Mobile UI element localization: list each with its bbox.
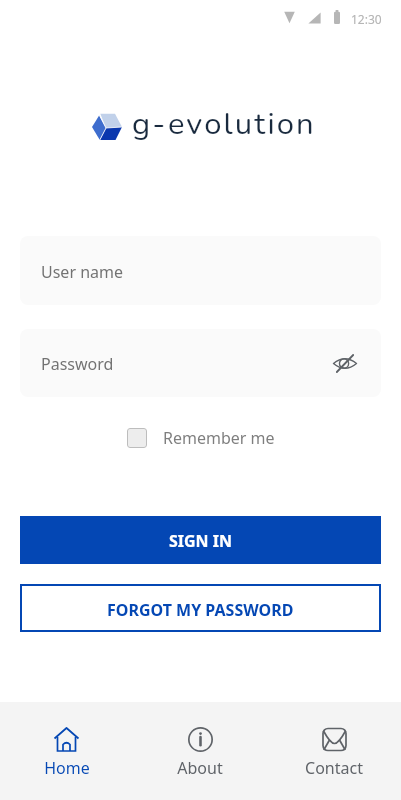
staticText: Remember me bbox=[163, 427, 275, 449]
staticText: About bbox=[177, 757, 223, 779]
button[interactable]: User name bbox=[20, 236, 381, 305]
button[interactable]: Home bbox=[0, 702, 133, 800]
button[interactable]: SIGN IN bbox=[20, 516, 381, 564]
button[interactable]: Remember me bbox=[127, 423, 275, 453]
staticText: SIGN IN bbox=[169, 530, 233, 552]
staticText: Home bbox=[44, 757, 90, 779]
button[interactable]: Contact bbox=[267, 702, 401, 800]
staticText: FORGOT MY PASSWORD bbox=[107, 599, 294, 621]
button[interactable]: Show password bbox=[323, 341, 367, 385]
button[interactable]: About bbox=[133, 702, 267, 800]
staticText: 12:30 bbox=[351, 11, 382, 27]
staticText: Password bbox=[41, 353, 114, 375]
button[interactable]: FORGOT MY PASSWORD bbox=[20, 584, 381, 632]
staticText: User name bbox=[41, 261, 124, 283]
staticText: Contact bbox=[305, 757, 363, 779]
staticText: g-evolution bbox=[132, 103, 316, 145]
button[interactable]: Password bbox=[20, 329, 381, 397]
